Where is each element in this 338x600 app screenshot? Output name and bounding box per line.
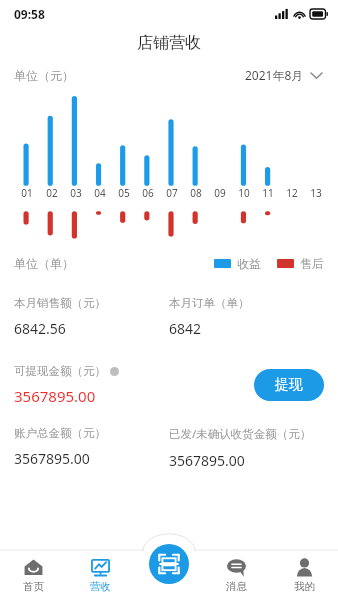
staticText: 首页 [23, 580, 44, 593]
button[interactable]: 营收 [67, 550, 134, 600]
button[interactable]: 消息 [202, 550, 270, 600]
staticText: 已发/未确认收货金额（元） [169, 426, 312, 442]
button[interactable]: 说明 [110, 367, 119, 376]
staticText: 04 [94, 186, 106, 200]
staticText: 13 [310, 186, 322, 200]
staticText: 我的 [294, 580, 315, 593]
staticText: 店铺营收 [137, 33, 201, 53]
staticText: 本月销售额（元） [14, 296, 106, 310]
staticText: 营收 [90, 580, 111, 593]
staticText: 收益 [237, 256, 261, 271]
staticText: 单位（元） [14, 68, 74, 83]
staticText: 可提现金额（元） [14, 364, 106, 378]
staticText: 售后 [300, 256, 324, 271]
staticText: 6842.56 [14, 319, 66, 338]
staticText: 02 [46, 186, 58, 200]
staticText: 本月订单（单） [169, 296, 250, 310]
staticText: 10 [238, 186, 250, 200]
staticText: 06 [142, 186, 154, 200]
staticText: 05 [118, 186, 130, 200]
staticText: 账户总金额（元） [14, 426, 106, 440]
button[interactable]: 扫一扫 [149, 544, 189, 584]
staticText: 12 [286, 186, 298, 200]
button[interactable]: 2021年8月 [243, 63, 324, 87]
staticText: 09:58 [14, 6, 45, 22]
button[interactable]: 首页 [0, 550, 67, 600]
staticText: 2021年8月 [245, 67, 304, 83]
staticText: 单位（单） [14, 256, 74, 271]
button[interactable]: 我的 [270, 550, 338, 600]
staticText: 07 [166, 186, 178, 200]
staticText: 11 [262, 186, 274, 200]
staticText: 09 [214, 186, 226, 200]
button[interactable]: 提现 [254, 369, 324, 401]
staticText: 01 [21, 186, 33, 200]
staticText: 消息 [226, 580, 247, 593]
staticText: 6842 [169, 319, 202, 338]
staticText: 3567895.00 [14, 386, 96, 406]
staticText: 3567895.00 [169, 451, 245, 470]
staticText: 03 [70, 186, 82, 200]
staticText: 3567895.00 [14, 449, 90, 468]
staticText: 提现 [275, 376, 303, 394]
staticText: 08 [190, 186, 202, 200]
